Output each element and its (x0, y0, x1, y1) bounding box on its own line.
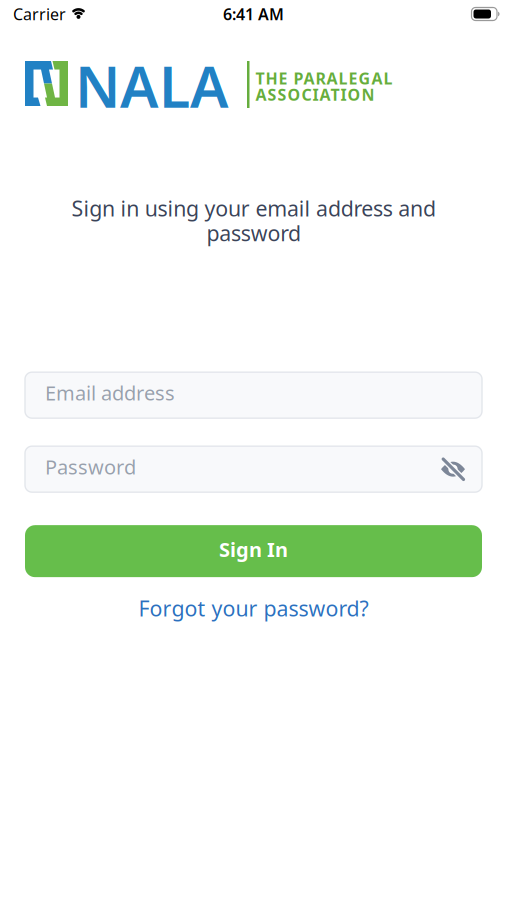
staticText: 6:41 AM (223, 3, 284, 25)
staticText: ASSOCIATION (255, 84, 374, 105)
button[interactable]: Forgot your password? (138, 594, 368, 622)
button[interactable]: Show password (440, 459, 482, 480)
staticText: Carrier (13, 3, 66, 25)
staticText: Sign In (219, 536, 288, 562)
staticText: Password (45, 453, 136, 480)
staticText: Forgot your password? (138, 594, 368, 622)
textField[interactable]: Password (47, 454, 482, 484)
staticText: THE PARALEGAL (255, 68, 392, 89)
staticText: NALA (75, 47, 229, 123)
textField[interactable]: Email address (45, 380, 482, 410)
staticText: Sign in using your email address and pas… (71, 194, 436, 247)
staticText: Email address (45, 379, 175, 406)
button[interactable]: Sign In (25, 525, 482, 577)
staticText: Email address (45, 380, 195, 410)
staticText: Password (47, 454, 151, 484)
